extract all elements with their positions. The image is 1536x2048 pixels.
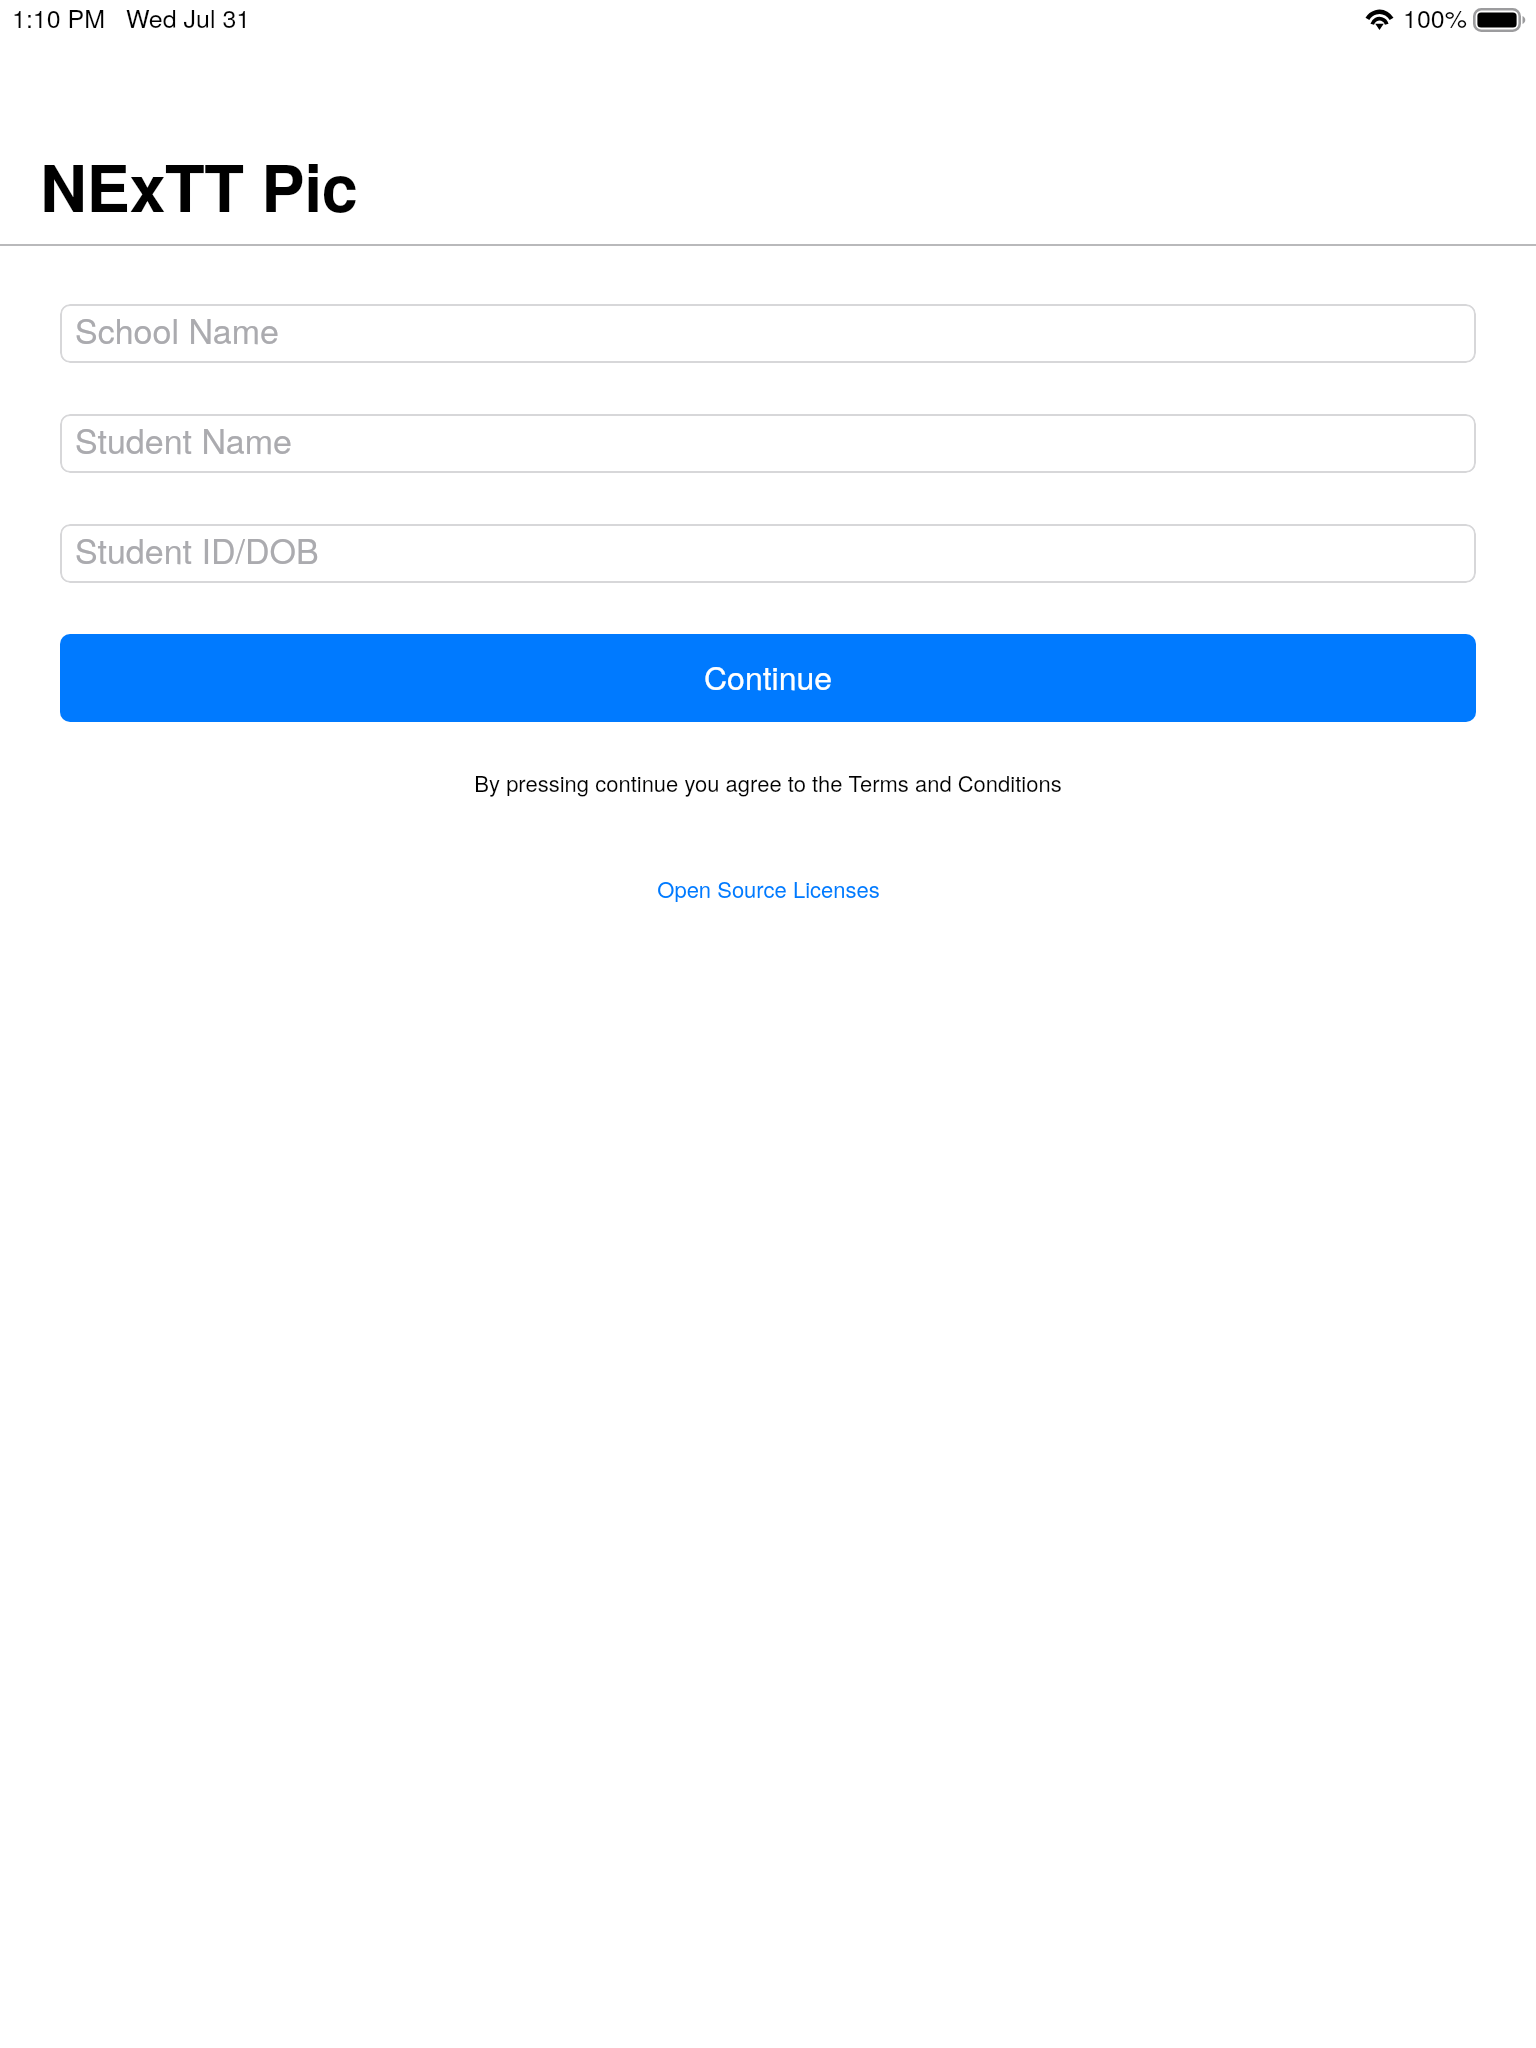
staticText: Student ID/DOB — [75, 525, 319, 574]
button[interactable]: Open Source Licenses — [653, 873, 884, 905]
other: Wi-Fi — [1365, 4, 1394, 31]
other: Battery 100 percent — [1473, 8, 1527, 32]
staticText: NExTT Pic — [40, 139, 358, 232]
button[interactable]: Student Name — [60, 414, 1476, 473]
button[interactable]: Continue — [60, 634, 1476, 722]
staticText: 1:10 PM Wed Jul 31 — [12, 0, 251, 35]
button[interactable]: Student ID/DOB — [60, 524, 1476, 583]
staticText: Student Name — [75, 415, 292, 464]
staticText: Continue — [704, 653, 833, 699]
staticText: By pressing continue you agree to the Te… — [0, 767, 1536, 799]
button[interactable]: School Name — [60, 304, 1476, 363]
staticText: School Name — [75, 305, 279, 354]
staticText: 100% — [1403, 0, 1467, 35]
